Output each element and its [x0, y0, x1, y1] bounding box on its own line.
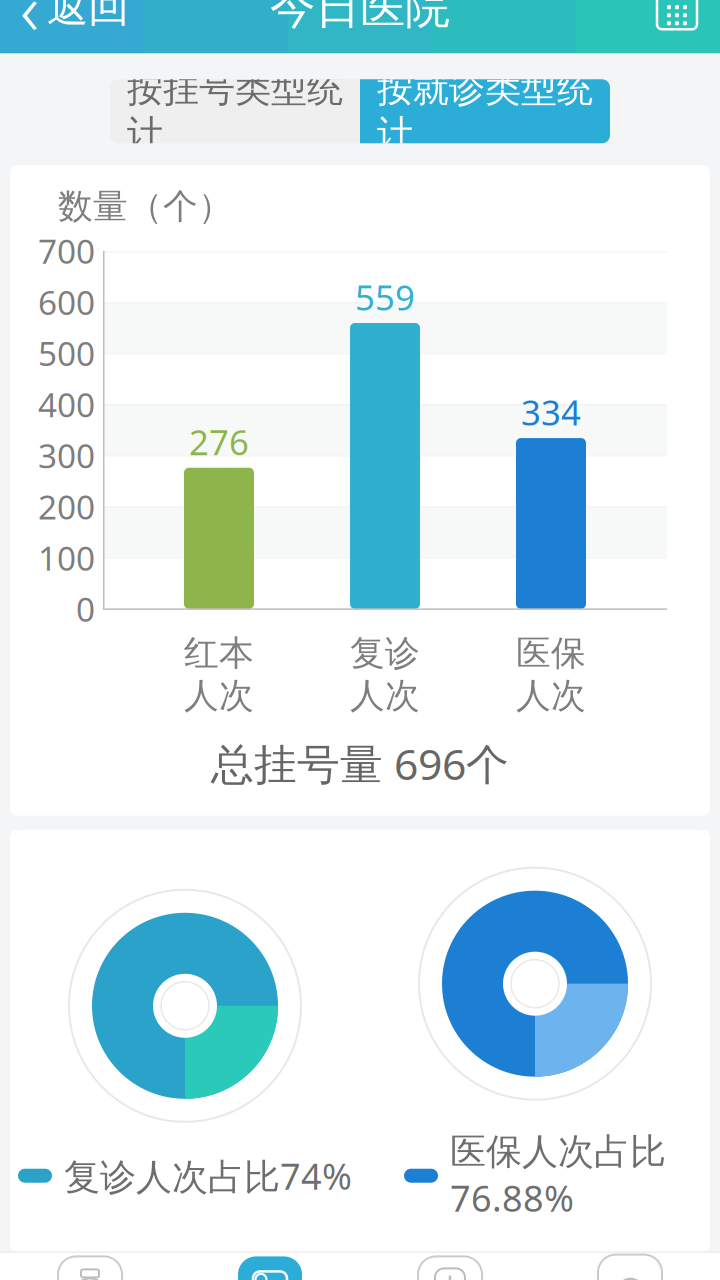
staticText: 返回 [47, 0, 129, 33]
staticText: 复诊人次占比74% [64, 1152, 352, 1200]
button[interactable]: 挂号 [180, 1256, 360, 1280]
staticText: 700 [38, 229, 95, 273]
staticText: 100 [38, 536, 95, 580]
staticText: 按挂号类型统计 [127, 67, 343, 155]
button[interactable]: e [540, 1256, 720, 1280]
staticText: ‹ [20, 0, 39, 55]
staticText: 红本人次 [184, 632, 254, 717]
staticText: 600 [38, 280, 95, 324]
staticText: 500 [38, 331, 95, 375]
staticText: 总挂号量 696个 [211, 735, 509, 792]
staticText: 400 [38, 382, 95, 426]
staticText: 今日医院 [270, 0, 450, 35]
staticText: ¥ [82, 1276, 98, 1280]
staticText: 数量（个） [58, 185, 233, 228]
staticText: 200 [38, 484, 95, 529]
staticText: 276 [189, 419, 249, 465]
button[interactable]: 日历 [634, 0, 720, 53]
button[interactable]: 按就诊类型统计 [360, 79, 610, 143]
staticText: 300 [38, 433, 95, 478]
staticText: 0 [76, 587, 95, 631]
staticText: 559 [355, 274, 415, 320]
staticText: 按就诊类型统计 [377, 67, 593, 155]
staticText: 复诊人次 [350, 632, 420, 717]
staticText: 医保人次 [516, 632, 586, 717]
button[interactable]: ‹ [0, 0, 143, 53]
button[interactable]: ¥ [0, 1256, 180, 1280]
button[interactable]: 按挂号类型统计 [110, 79, 360, 143]
staticText: 334 [521, 389, 581, 435]
button[interactable]: 住院 [360, 1256, 540, 1280]
staticText: 医保人次占比76.88% [450, 1130, 666, 1222]
staticText: e [614, 1249, 646, 1280]
